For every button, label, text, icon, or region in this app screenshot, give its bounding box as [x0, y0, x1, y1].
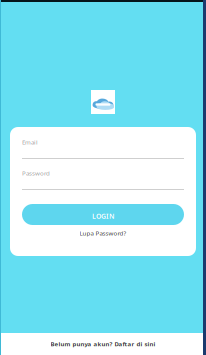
button[interactable]: Belum punya akun? Daftar di sini: [0, 333, 206, 355]
button[interactable]: LOGIN: [22, 204, 184, 225]
staticText: Belum punya akun? Daftar di sini: [50, 340, 155, 348]
staticText: Password: [22, 169, 50, 177]
staticText: Email: [22, 138, 38, 146]
button[interactable]: Lupa Password?: [22, 229, 184, 237]
staticText: LOGIN: [92, 211, 114, 221]
staticText: Lupa Password?: [79, 229, 126, 237]
